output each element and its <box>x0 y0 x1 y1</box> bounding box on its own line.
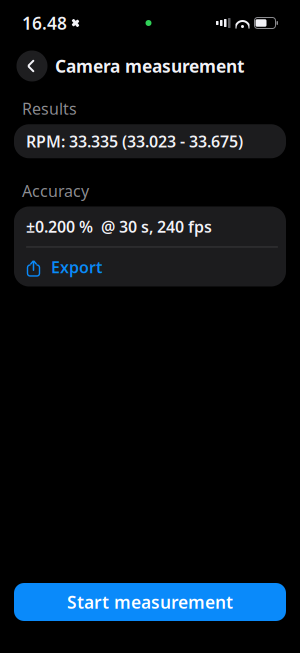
button[interactable]: Start measurement <box>14 583 286 621</box>
staticText: Results <box>22 98 77 119</box>
staticText: Accuracy <box>22 180 89 201</box>
button[interactable]: Back <box>14 48 50 84</box>
staticText: Camera measurement <box>55 54 245 77</box>
button[interactable]: Export <box>14 247 286 286</box>
staticText: 16.48 <box>22 11 67 34</box>
staticText: Export <box>51 256 102 278</box>
staticText: Start measurement <box>67 590 233 613</box>
staticText: ±0.200 % @ 30 s, 240 fps <box>26 216 212 237</box>
staticText: RPM: 33.335 (33.023 - 33.675) <box>26 131 243 152</box>
